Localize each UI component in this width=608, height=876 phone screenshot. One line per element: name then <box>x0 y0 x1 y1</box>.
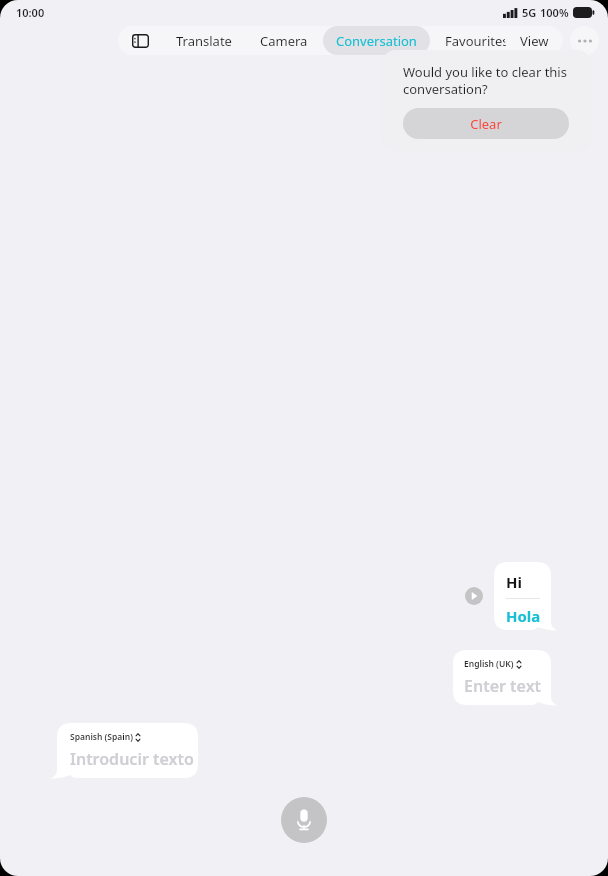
staticText: Conversation <box>336 32 417 50</box>
staticText: 100% <box>540 5 569 20</box>
staticText: 5G <box>522 5 537 20</box>
button[interactable]: Favourites <box>432 26 522 55</box>
staticText: Would you like to clear this conversatio… <box>403 63 580 98</box>
staticText: Hola <box>506 606 541 626</box>
button[interactable]: Record speech <box>281 797 327 843</box>
staticText: Clear <box>470 115 502 133</box>
staticText: Camera <box>260 32 308 50</box>
button[interactable]: More options <box>570 26 599 55</box>
staticText: Introducir texto <box>70 748 194 770</box>
button[interactable]: Clear <box>403 108 569 139</box>
button[interactable]: Play translation <box>465 587 483 605</box>
staticText: Enter text <box>464 675 542 697</box>
staticText: 10:00 <box>16 5 45 20</box>
button[interactable]: Hi <box>494 562 551 630</box>
staticText: Hi <box>506 572 522 592</box>
button[interactable]: Show sidebar <box>118 26 162 55</box>
button[interactable]: Spanish (Spain) <box>57 723 198 778</box>
button[interactable]: View <box>505 26 563 55</box>
button[interactable]: Conversation <box>323 26 430 55</box>
staticText: View <box>520 32 549 50</box>
staticText: English (UK) <box>464 658 514 670</box>
staticText: Spanish (Spain) <box>70 731 133 743</box>
staticText: Translate <box>176 32 232 50</box>
button[interactable]: Camera <box>247 26 321 55</box>
button[interactable]: Translate <box>163 26 245 55</box>
button[interactable]: English (UK) <box>453 650 551 705</box>
staticText: Favourites <box>445 32 509 50</box>
